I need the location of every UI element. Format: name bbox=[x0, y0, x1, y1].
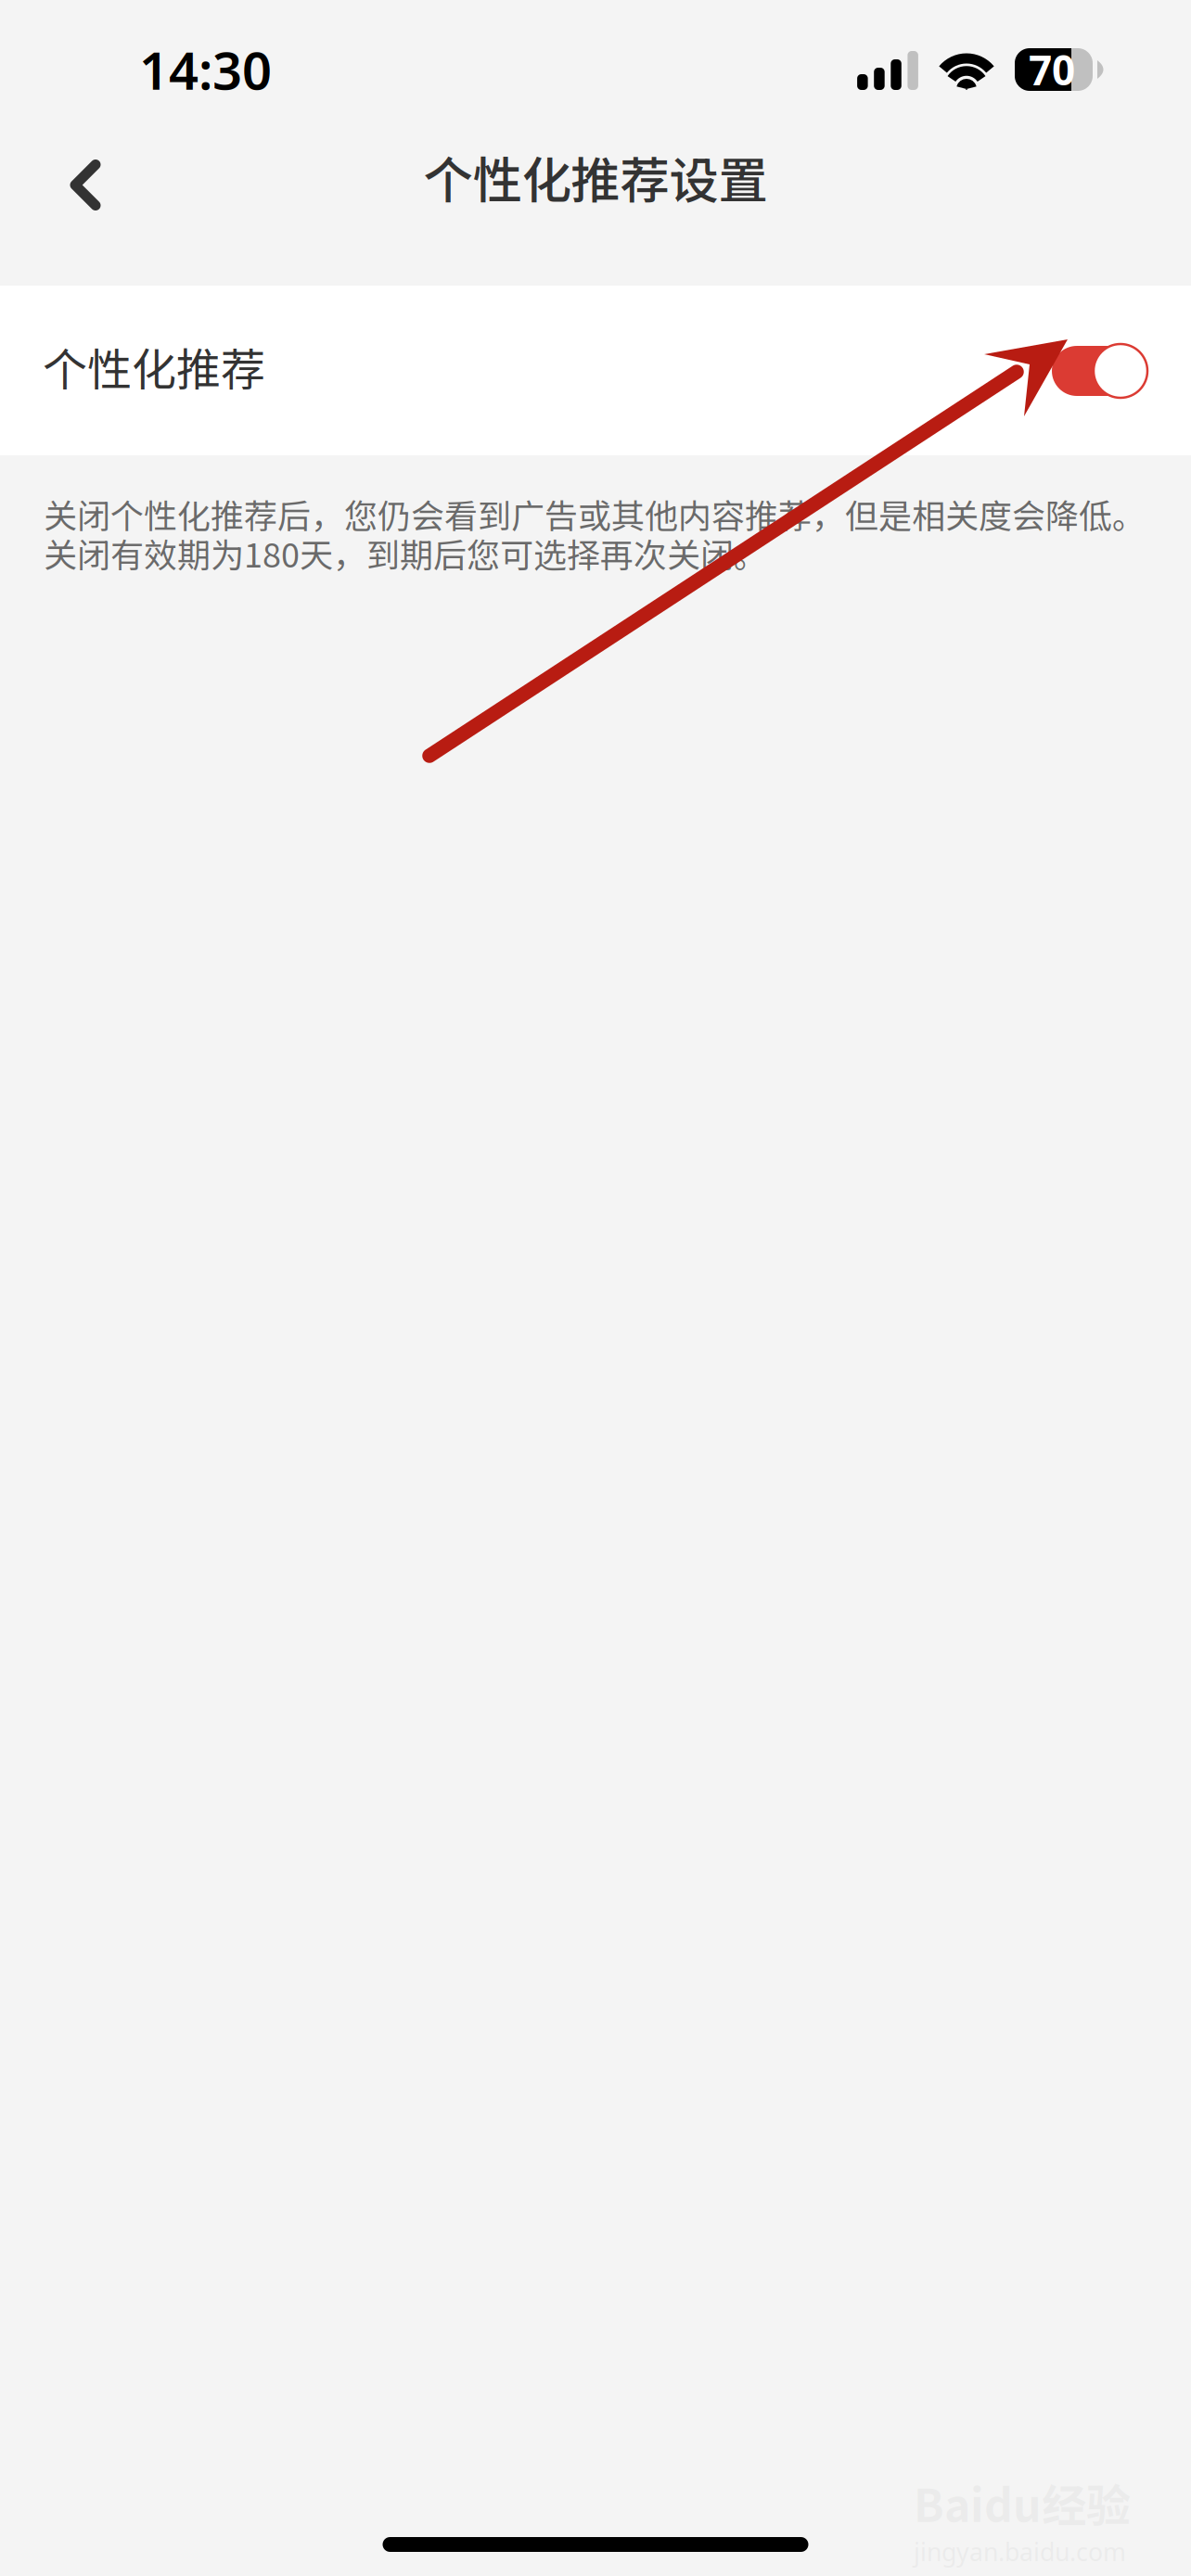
button[interactable]: 个性化推荐 bbox=[0, 286, 1191, 455]
staticText: 14:30 bbox=[139, 34, 272, 105]
button[interactable]: 返回 bbox=[0, 118, 135, 236]
staticText: Baidu经验 bbox=[914, 2470, 1131, 2535]
staticText: 个性化推荐设置 bbox=[423, 141, 768, 213]
staticText: 个性化推荐 bbox=[43, 334, 265, 398]
staticText: 关闭个性化推荐后，您仍会看到广告或其他内容推荐，但是相关度会降低。关闭有效期为1… bbox=[44, 494, 1146, 573]
staticText: 70 bbox=[1029, 42, 1075, 97]
